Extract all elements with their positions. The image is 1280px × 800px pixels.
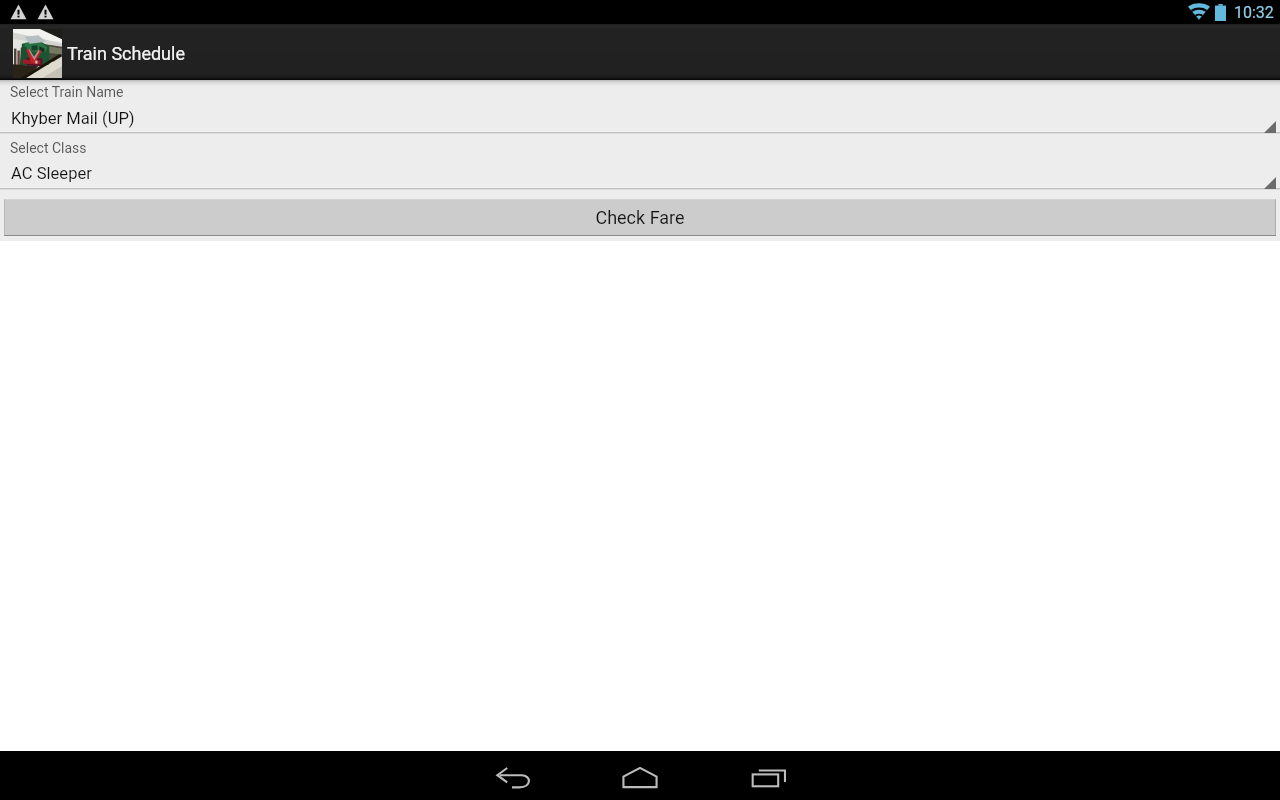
button[interactable]: Select Class — [0, 132, 1280, 188]
button[interactable]: Back — [490, 754, 538, 800]
button[interactable]: Home — [616, 753, 664, 800]
button[interactable]: Check Fare — [4, 199, 1276, 236]
staticText: Check Fare — [595, 207, 685, 228]
staticText: 10:32 — [1234, 3, 1274, 22]
staticText: Khyber Mail (UP) — [11, 109, 135, 128]
staticText: Select Class — [10, 140, 87, 156]
staticText: AC Sleeper — [11, 164, 92, 183]
button[interactable]: Select Train Name — [0, 80, 1280, 132]
staticText: Train Schedule — [67, 43, 185, 64]
staticText: Select Train Name — [10, 84, 124, 100]
button[interactable]: Recent apps — [745, 754, 793, 800]
